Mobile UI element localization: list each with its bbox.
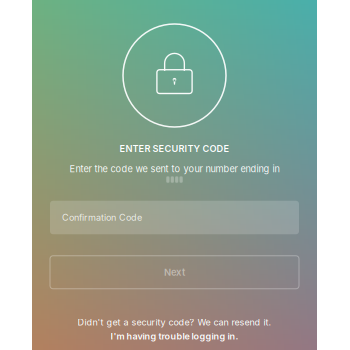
button[interactable]: Next xyxy=(50,256,299,289)
button[interactable]: I'm having trouble logging in. xyxy=(110,331,238,342)
button[interactable]: Didn't get a security code? We can resen… xyxy=(77,317,271,328)
staticText: ENTER SECURITY CODE xyxy=(119,143,229,154)
staticText: Confirmation Code xyxy=(62,212,142,223)
staticText: Didn't get a security code? We can resen… xyxy=(77,317,271,328)
staticText: Next xyxy=(164,266,185,278)
staticText: I'm having trouble logging in. xyxy=(110,331,238,342)
staticText: Enter the code we sent to your number en… xyxy=(69,163,279,174)
